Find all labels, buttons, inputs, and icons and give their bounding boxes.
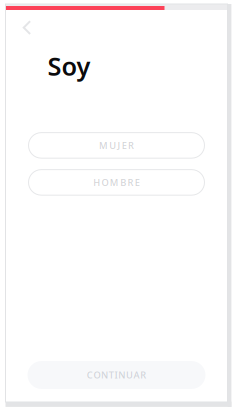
button[interactable]: C [27,361,205,389]
staticText: U [126,369,133,381]
staticText: M [110,176,119,189]
staticText: H [93,176,100,189]
staticText: B [120,176,126,189]
staticText: R [140,369,146,381]
staticText: J [117,139,120,152]
button[interactable]: M [28,133,204,158]
staticText: C [87,369,93,381]
staticText: O [101,176,108,189]
staticText: I [114,369,117,381]
staticText: R [128,139,134,152]
staticText: N [101,369,108,381]
button[interactable]: H [28,170,204,195]
staticText: M [99,139,108,152]
staticText: N [118,369,125,381]
staticText: T [109,369,114,381]
staticText: Soy [47,49,90,83]
staticText: R [127,176,133,189]
staticText: U [109,139,116,152]
button[interactable]: Back [5,10,41,43]
staticText: O [93,369,100,381]
staticText: A [134,369,140,381]
staticText: E [122,139,127,152]
staticText: E [135,176,140,189]
